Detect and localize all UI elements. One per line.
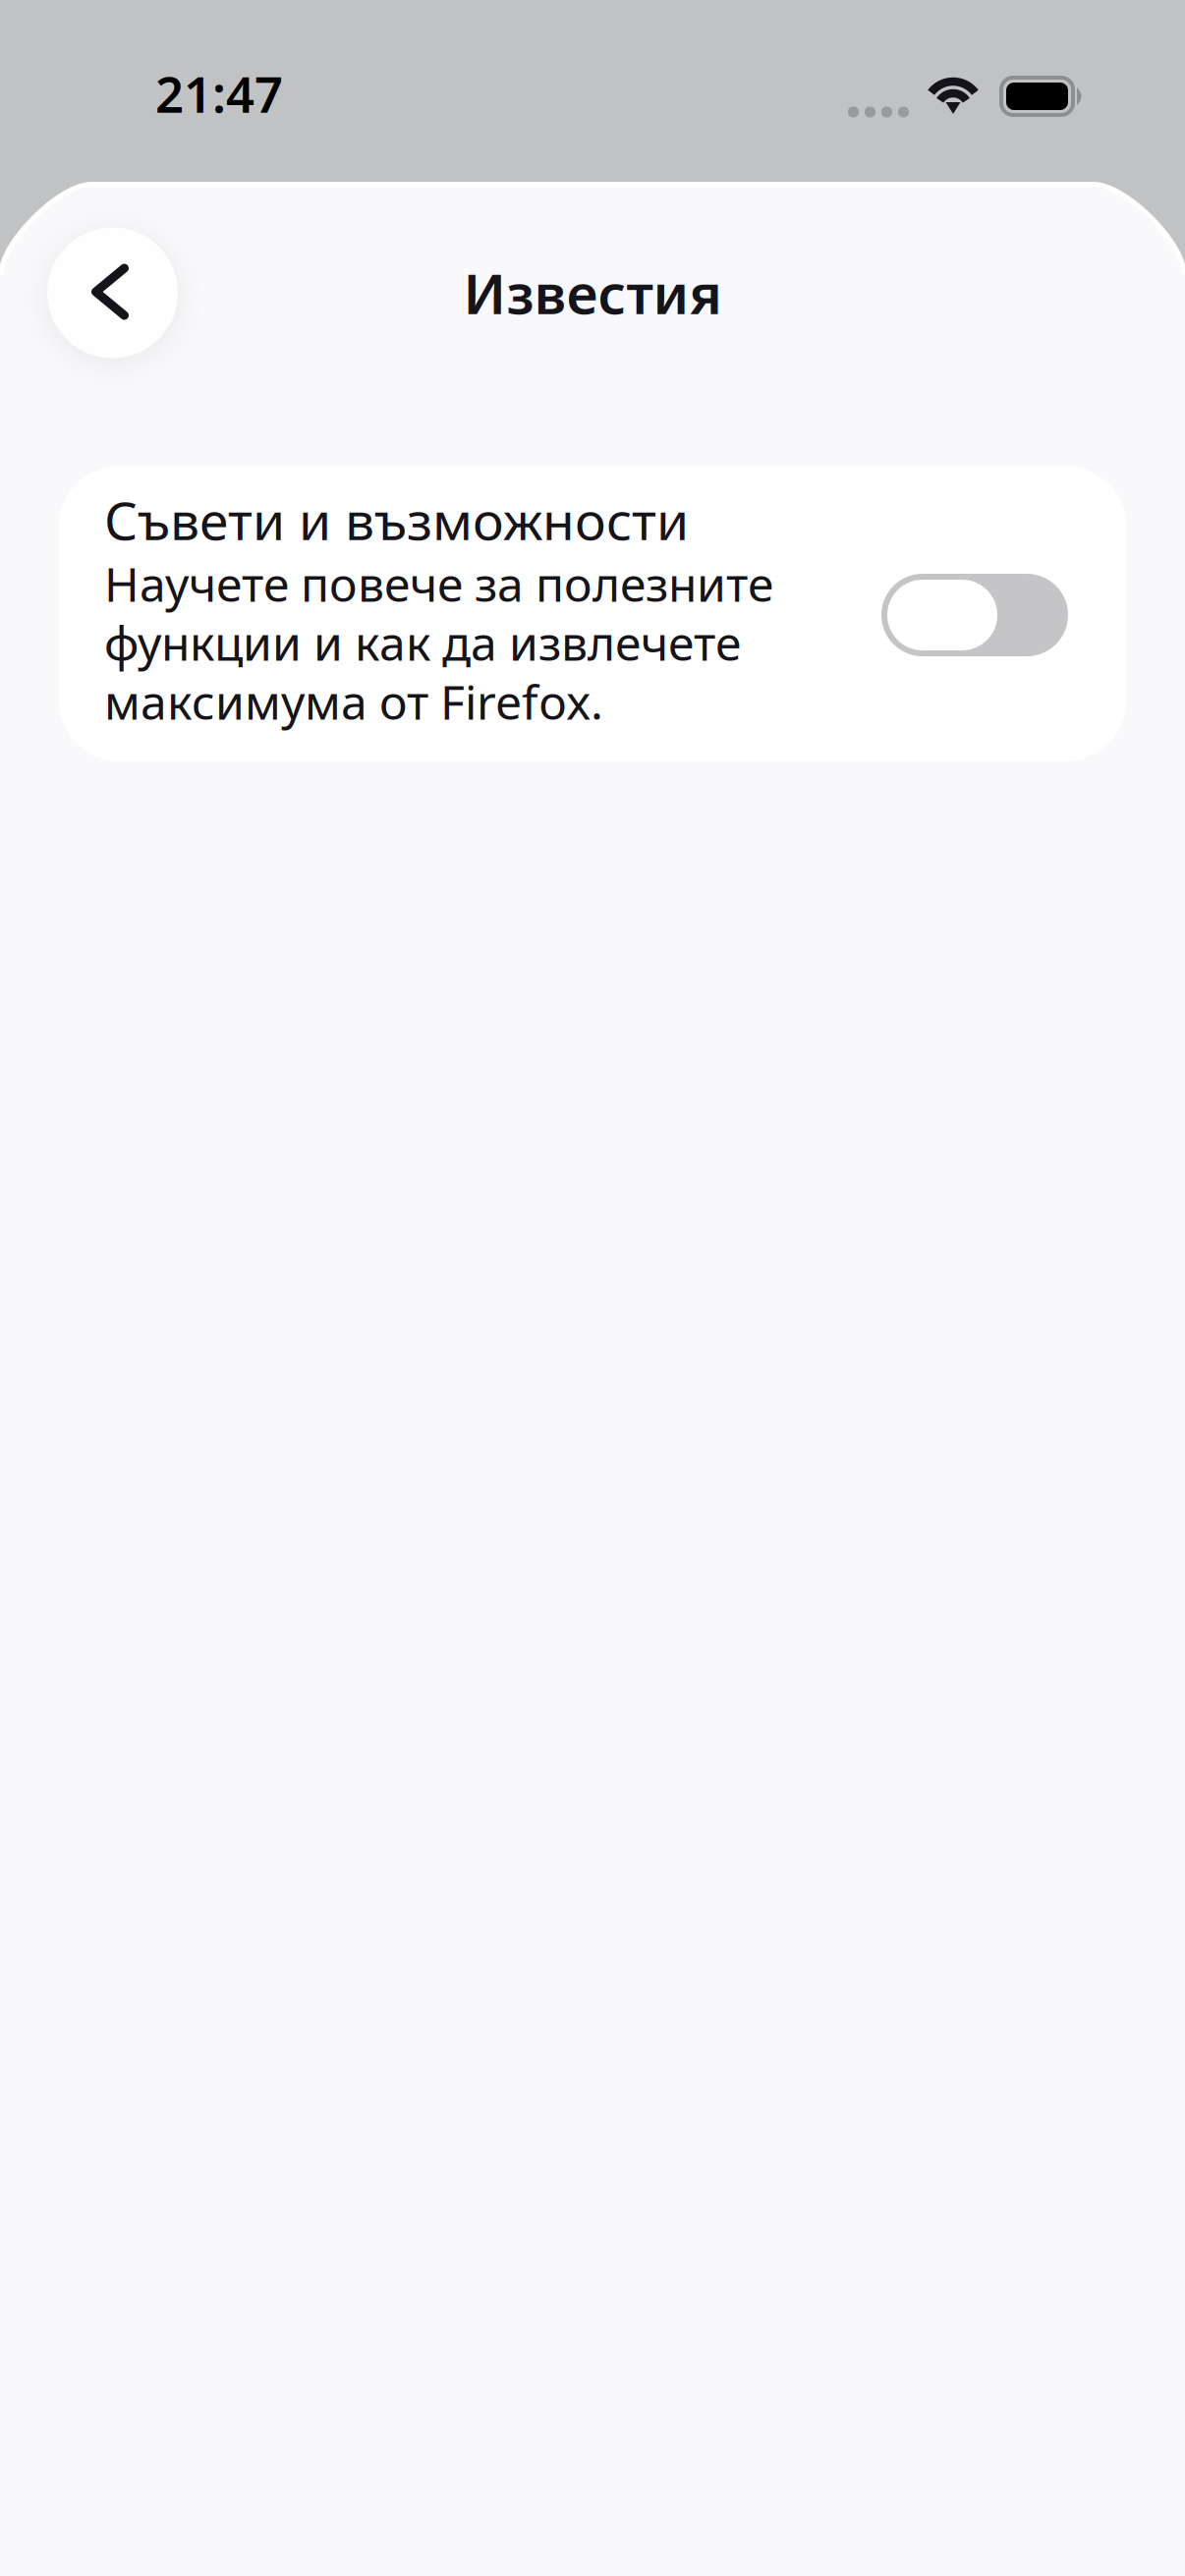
staticText: Съвети и възможности [104,485,689,554]
staticText: функции и как да извлечете [104,611,741,674]
staticText: максимума от Firefox. [104,670,603,733]
staticText: Научете повече за полезните [104,552,773,615]
button[interactable]: Back [47,227,178,358]
staticText: Известия [463,256,722,329]
staticText: 21:47 [155,60,283,126]
